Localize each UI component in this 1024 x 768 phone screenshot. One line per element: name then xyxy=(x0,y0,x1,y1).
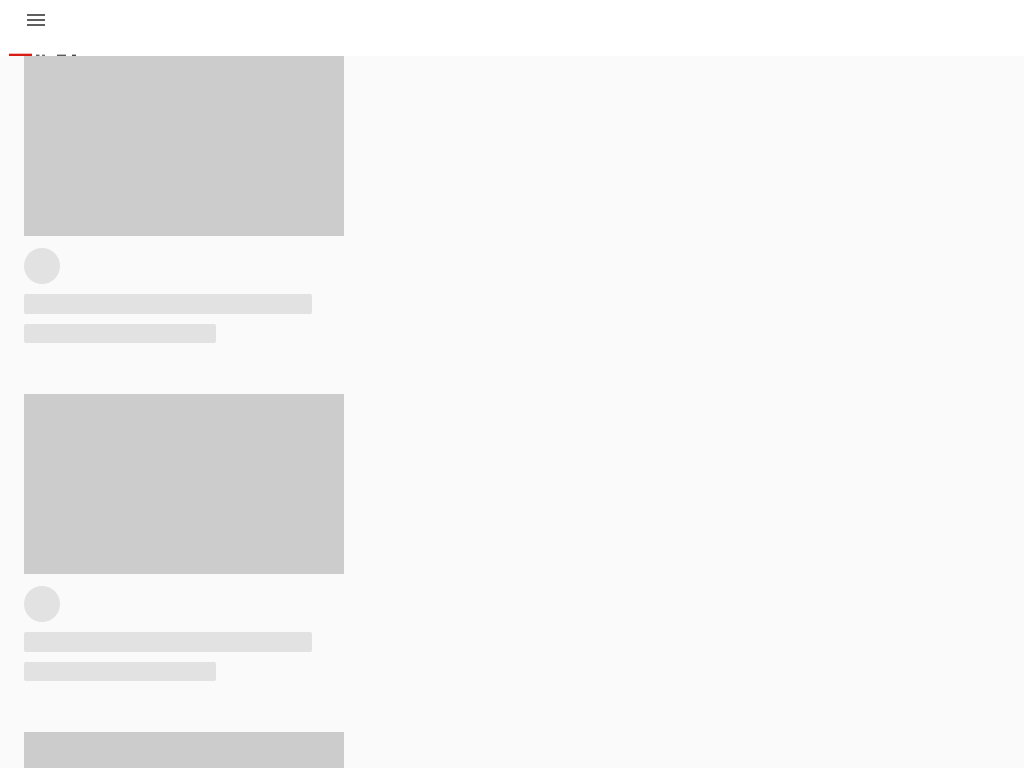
button[interactable]: Loading video xyxy=(24,56,344,343)
button[interactable]: Today xyxy=(33,46,55,56)
button[interactable]: Loading video xyxy=(24,394,344,681)
button[interactable]: Trending xyxy=(55,46,82,56)
button[interactable]: Open navigation menu xyxy=(16,0,56,40)
button[interactable]: New xyxy=(6,46,33,56)
